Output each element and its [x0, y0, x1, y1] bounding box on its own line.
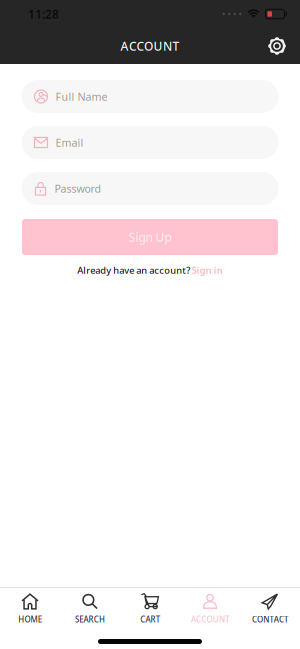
button[interactable]: CART: [120, 588, 180, 625]
staticText: 11:28: [28, 6, 59, 22]
staticText: ACCOUNT: [120, 38, 179, 54]
staticText: Sign in: [192, 264, 223, 276]
staticText: HOME: [18, 614, 42, 625]
button[interactable]: HOME: [0, 588, 60, 625]
staticText: SEARCH: [75, 614, 105, 625]
staticText: ACCOUNT: [191, 614, 229, 625]
button[interactable]: SEARCH: [60, 588, 120, 625]
staticText: CONTACT: [252, 614, 288, 625]
staticText: Already have an account?: [77, 264, 190, 276]
button[interactable]: ACCOUNT: [180, 588, 240, 625]
secureTextField[interactable]: Password: [54, 181, 278, 196]
staticText: CART: [140, 614, 160, 625]
textField[interactable]: Full Name: [55, 89, 278, 104]
staticText: Sign Up: [128, 229, 171, 245]
textField[interactable]: Email: [55, 135, 278, 150]
staticText: Full Name: [55, 89, 107, 104]
button[interactable]: CONTACT: [240, 588, 300, 625]
button[interactable]: Sign in: [192, 264, 223, 276]
staticText: Email: [55, 135, 83, 150]
button[interactable]: Settings: [268, 29, 300, 63]
button[interactable]: Sign Up: [22, 219, 278, 255]
staticText: Password: [54, 181, 101, 196]
